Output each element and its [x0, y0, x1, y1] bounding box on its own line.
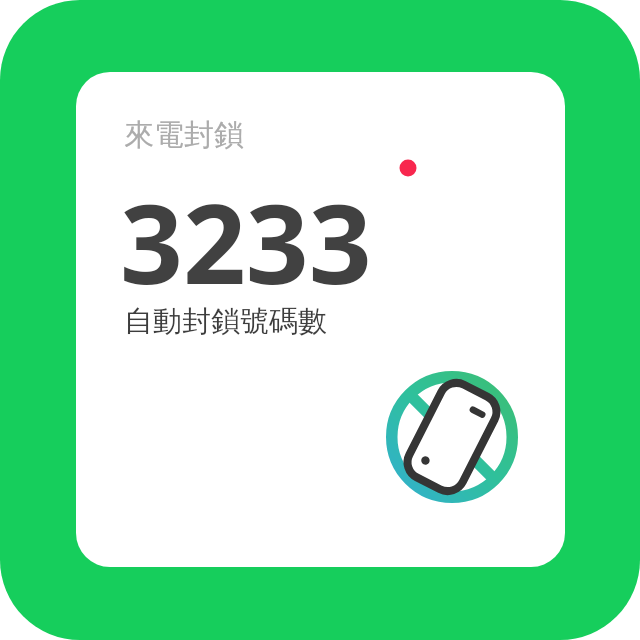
button[interactable]: Call blocking tile, 3233 numbers auto-bl…: [0, 0, 640, 640]
